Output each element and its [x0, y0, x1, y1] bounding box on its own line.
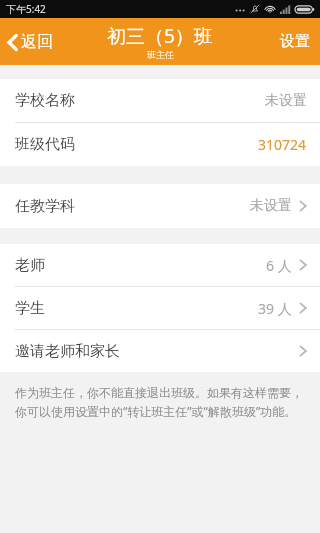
staticText: 310724	[258, 135, 307, 154]
staticText: 班级代码	[15, 135, 75, 154]
staticText: 未设置	[250, 197, 292, 215]
staticText: 初三（5）班	[107, 23, 213, 49]
button[interactable]: 设置	[268, 23, 320, 60]
staticText: 未设置	[265, 92, 307, 110]
staticText: 学生	[15, 299, 45, 318]
staticText: 任教学科	[15, 197, 75, 216]
button[interactable]: 任教学科	[0, 184, 320, 228]
staticText: 设置	[280, 32, 310, 51]
button[interactable]: 老师	[0, 244, 320, 286]
staticText: 学校名称	[15, 91, 75, 110]
staticText: 返回	[21, 32, 53, 52]
button[interactable]: 班级代码	[0, 123, 320, 166]
button[interactable]: 学生	[0, 287, 320, 329]
staticText: 班主任	[147, 49, 174, 60]
staticText: 作为班主任，你不能直接退出班级。如果有这样需要，你可以使用设置中的“转让班主任”…	[15, 385, 306, 419]
staticText: 下午5:42	[6, 2, 46, 16]
button[interactable]: 返回	[0, 25, 65, 59]
staticText: 39 人	[258, 299, 292, 318]
button[interactable]: 学校名称	[0, 79, 320, 122]
staticText: 邀请老师和家长	[15, 342, 120, 361]
button[interactable]: 邀请老师和家长	[0, 330, 320, 372]
staticText: 6 人	[266, 256, 292, 275]
staticText: 老师	[15, 256, 45, 275]
